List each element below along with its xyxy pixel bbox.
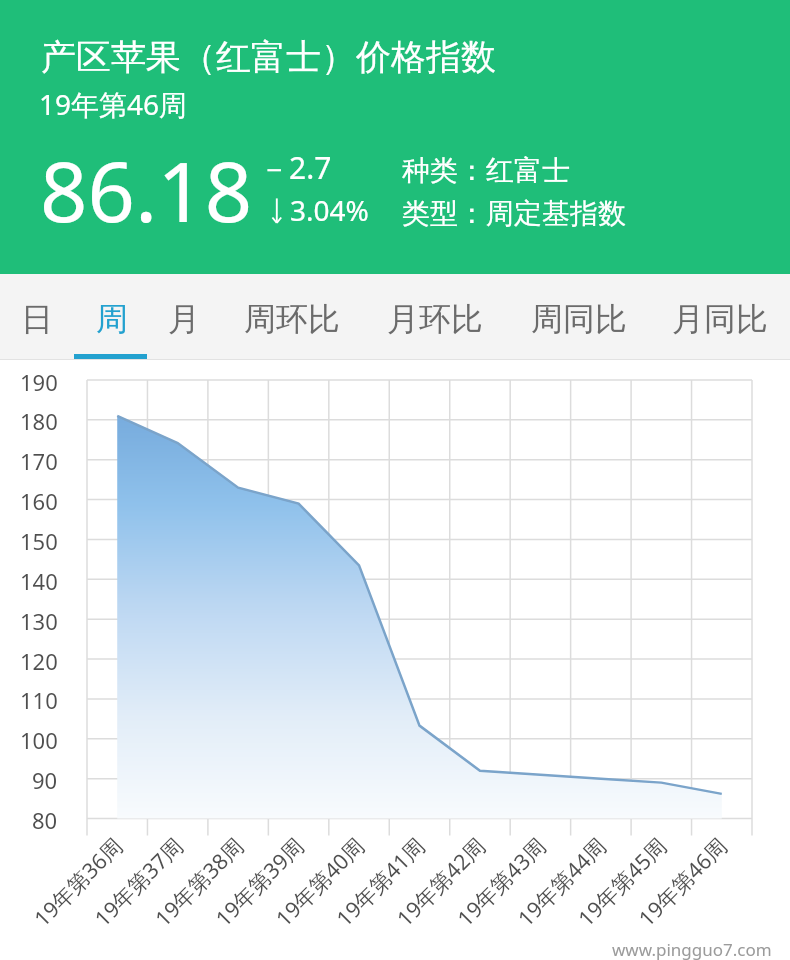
button[interactable]: 月 — [147, 274, 238, 360]
staticText: 种类：红富士 — [402, 153, 570, 188]
other: Weekly price index chart — [0, 360, 790, 960]
staticText: 19年第46周 — [39, 85, 188, 123]
staticText: 日 — [21, 299, 53, 339]
button[interactable]: 月同比 — [649, 274, 790, 360]
button[interactable]: 周 — [74, 274, 147, 360]
staticText: 产区苹果（红富士）价格指数 — [41, 35, 496, 79]
staticText: 3.04% — [290, 191, 369, 229]
button[interactable]: 周同比 — [506, 274, 649, 360]
staticText: 周同比 — [531, 299, 627, 339]
staticText: 月 — [168, 299, 200, 339]
button[interactable]: 日 — [0, 274, 74, 360]
staticText: －2.7 — [259, 147, 332, 188]
staticText: 类型：周定基指数 — [402, 196, 626, 231]
staticText: 86.18 — [40, 133, 253, 246]
staticText: 周 — [96, 299, 128, 339]
other: Decrease — [270, 196, 286, 226]
staticText: 月同比 — [672, 299, 768, 339]
button[interactable]: 月环比 — [363, 274, 506, 360]
staticText: 周环比 — [244, 299, 340, 339]
button[interactable]: 周环比 — [237, 274, 363, 360]
staticText: 月环比 — [387, 299, 483, 339]
